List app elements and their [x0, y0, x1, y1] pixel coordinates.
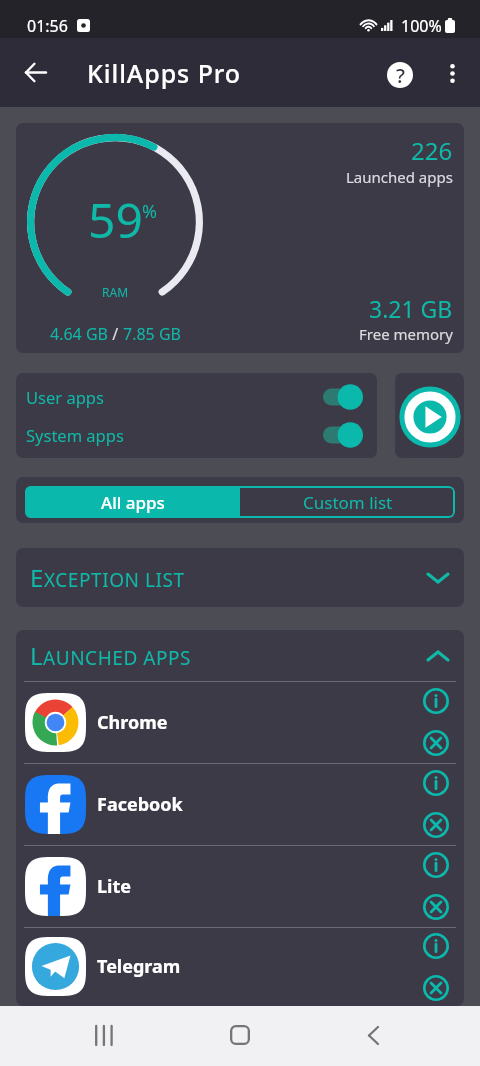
staticText: Free memory — [359, 324, 453, 344]
button[interactable]: Recents — [0, 1006, 209, 1066]
button[interactable]: Close app — [419, 726, 453, 760]
staticText: 01:56 — [27, 15, 68, 37]
button[interactable]: Lite — [16, 845, 464, 927]
button[interactable]: User apps — [26, 384, 363, 410]
staticText: 59 — [88, 187, 143, 252]
button[interactable]: Kill apps — [395, 373, 464, 458]
staticText: E — [30, 561, 44, 594]
button[interactable]: Close app — [419, 890, 453, 924]
staticText: Lite — [97, 874, 132, 899]
staticText: All apps — [101, 491, 165, 514]
button[interactable]: Back — [270, 1006, 480, 1066]
staticText: RAM — [102, 284, 129, 300]
staticText: Chrome — [97, 710, 168, 735]
button[interactable]: All apps — [25, 486, 240, 518]
staticText: XCEPTION LIST — [44, 567, 185, 593]
button[interactable]: System apps — [26, 422, 363, 448]
button[interactable]: L — [16, 630, 464, 681]
button[interactable]: Home — [209, 1006, 270, 1066]
staticText: KillApps Pro — [87, 56, 242, 90]
button[interactable]: More options — [428, 38, 474, 107]
button[interactable]: Telegram — [16, 927, 464, 1006]
button[interactable]: App info — [419, 929, 453, 963]
staticText: ? — [396, 62, 405, 88]
button[interactable]: Close app — [419, 808, 453, 842]
button[interactable]: Custom list — [240, 486, 455, 518]
button[interactable]: E — [16, 548, 464, 607]
button[interactable]: App info — [419, 684, 453, 718]
staticText: 7.85 GB — [123, 323, 181, 345]
button[interactable]: App info — [419, 848, 453, 882]
staticText: Facebook — [97, 792, 183, 817]
button[interactable]: Chrome — [16, 681, 464, 763]
staticText: Custom list — [303, 491, 393, 514]
staticText: 3.21 GB — [369, 293, 453, 324]
staticText: System apps — [26, 424, 124, 446]
staticText: 100% — [401, 15, 442, 37]
button[interactable]: Back — [0, 38, 70, 107]
button[interactable]: Help — [374, 38, 428, 107]
staticText: AUNCHED APPS — [43, 645, 192, 671]
staticText: Telegram — [97, 954, 181, 979]
button[interactable]: Close app — [419, 971, 453, 1005]
staticText: 4.64 GB — [50, 323, 108, 345]
staticText: 226 — [411, 134, 453, 167]
button[interactable]: App info — [419, 766, 453, 800]
staticText: User apps — [26, 386, 104, 408]
button[interactable]: Facebook — [16, 763, 464, 845]
staticText: % — [142, 199, 157, 224]
staticText: L — [30, 639, 43, 672]
staticText: / — [108, 323, 123, 345]
staticText: Launched apps — [346, 167, 453, 187]
